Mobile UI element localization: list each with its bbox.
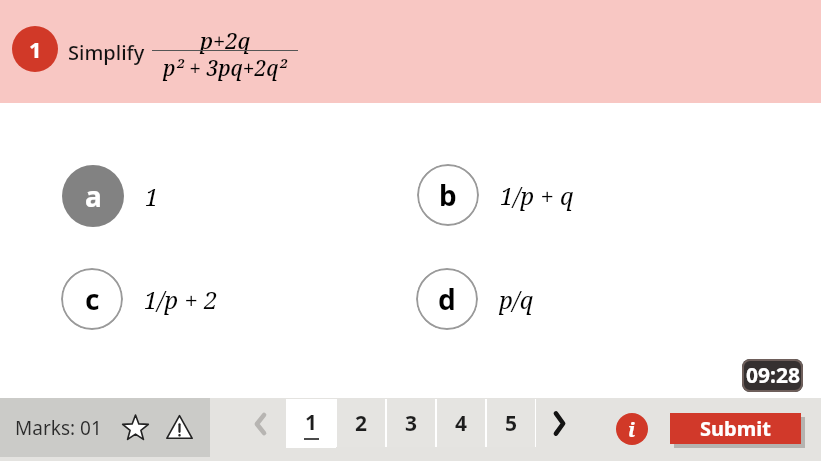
button[interactable]: c	[61, 268, 218, 330]
button[interactable]: Marks: 01	[0, 398, 210, 457]
staticText: c	[85, 280, 100, 318]
button[interactable]: a	[62, 165, 159, 227]
button[interactable]: 2	[337, 399, 385, 447]
staticText: d	[438, 280, 456, 318]
staticText: i	[628, 416, 636, 443]
staticText: p/q	[499, 283, 534, 316]
staticText: 5	[505, 409, 518, 438]
staticText: a	[85, 177, 102, 215]
staticText: 1	[29, 34, 42, 64]
button[interactable]: 4	[437, 399, 485, 447]
staticText: p² + 3pq+2q²	[163, 54, 287, 83]
button[interactable]: i	[616, 413, 648, 445]
button[interactable]: 3	[387, 399, 435, 447]
staticText: 3	[405, 409, 418, 438]
staticText: Marks: 01	[15, 415, 102, 441]
button[interactable]: b	[417, 164, 574, 226]
staticText: 1	[305, 408, 318, 437]
staticText: 4	[455, 409, 468, 438]
staticText: 09:28	[746, 361, 800, 390]
staticText: p+2q	[200, 25, 251, 55]
staticText: Simplify	[68, 39, 145, 66]
staticText: 1/p + q	[500, 179, 574, 212]
staticText: b	[439, 176, 457, 214]
staticText: 1	[145, 180, 159, 213]
button[interactable]: 1	[287, 399, 335, 448]
button[interactable]: Submit	[670, 413, 801, 444]
staticText: Submit	[700, 415, 771, 442]
staticText: 2	[355, 409, 368, 438]
button[interactable]	[248, 411, 274, 437]
button[interactable]: 5	[487, 399, 535, 447]
button[interactable]: d	[416, 268, 534, 330]
button[interactable]	[546, 409, 572, 438]
staticText: 1/p + 2	[144, 283, 218, 316]
